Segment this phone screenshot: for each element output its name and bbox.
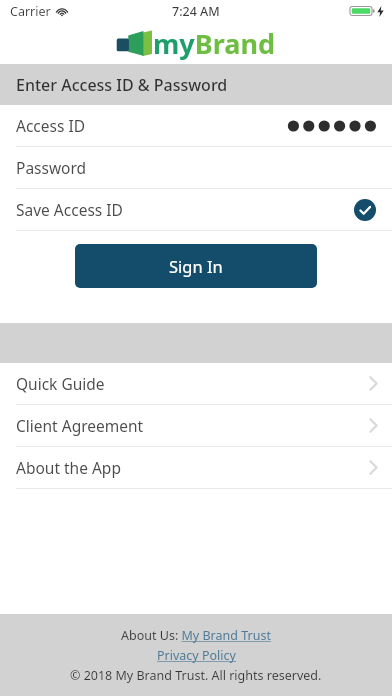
staticText: Access ID: [16, 115, 85, 136]
staticText: Quick Guide: [16, 373, 105, 394]
staticText: About the App: [16, 457, 121, 478]
staticText: Save Access ID: [16, 199, 123, 220]
button[interactable]: Password: [0, 147, 392, 188]
staticText: myBrand: [153, 25, 276, 62]
button[interactable]: Privacy Policy: [157, 647, 236, 664]
button[interactable]: Sign In: [75, 244, 317, 288]
staticText: About Us: My Brand Trust: [121, 627, 271, 644]
staticText: 7:24 AM: [172, 3, 220, 20]
other: Save Access ID checked: [354, 199, 376, 221]
button[interactable]: Save Access ID: [0, 189, 392, 230]
staticText: Carrier: [10, 3, 51, 20]
staticText: Sign In: [169, 255, 223, 277]
staticText: Client Agreement: [16, 415, 144, 436]
staticText: Password: [16, 157, 87, 178]
button[interactable]: Access ID: [0, 105, 392, 146]
staticText: Enter Access ID & Password: [16, 74, 228, 96]
staticText: © 2018 My Brand Trust. All rights reserv…: [70, 667, 322, 684]
button[interactable]: Client Agreement: [0, 405, 392, 446]
staticText: Privacy Policy: [157, 647, 236, 664]
button[interactable]: About the App: [0, 447, 392, 488]
button[interactable]: Quick Guide: [0, 363, 392, 404]
